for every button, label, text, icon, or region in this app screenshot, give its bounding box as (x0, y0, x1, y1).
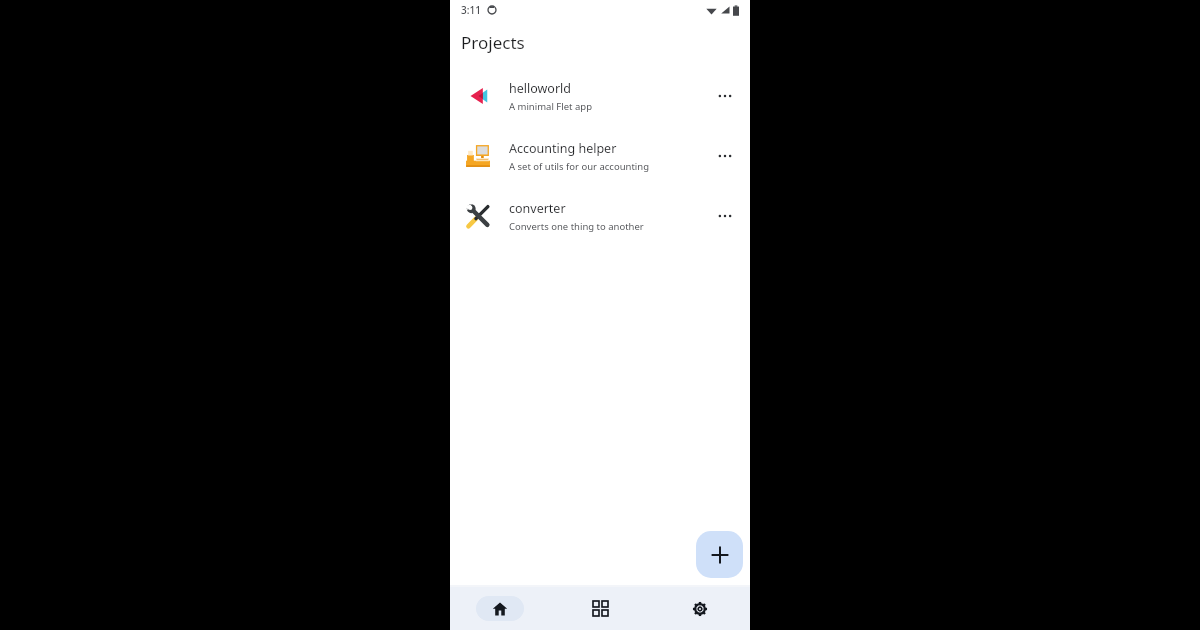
staticText: helloworld (509, 80, 572, 97)
button[interactable]: Settings (650, 587, 750, 630)
button[interactable]: Home (450, 587, 550, 630)
staticText: A set of utils for our accounting (509, 160, 650, 173)
staticText: converter (509, 200, 566, 217)
button[interactable]: helloworld (450, 66, 750, 126)
staticText: Projects (461, 31, 525, 54)
staticText: A minimal Flet app (509, 100, 592, 113)
button[interactable]: Add project (696, 531, 743, 578)
button[interactable]: Accounting helper (450, 126, 750, 186)
button[interactable]: converter (450, 186, 750, 246)
button[interactable]: More options (708, 139, 742, 173)
staticText: Converts one thing to another (509, 220, 644, 233)
button[interactable]: Apps (550, 587, 650, 630)
button[interactable]: More options (708, 199, 742, 233)
staticText: Accounting helper (509, 140, 617, 157)
staticText: 3:11 (461, 3, 481, 17)
button[interactable]: More options (708, 79, 742, 113)
